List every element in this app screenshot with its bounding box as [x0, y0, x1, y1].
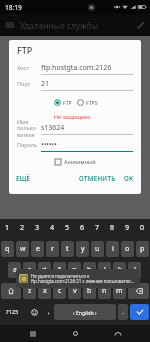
button[interactable]: Backspace: [128, 283, 149, 299]
button[interactable]: i: [106, 241, 119, 257]
staticText: Имя пользо-вателя: [17, 118, 45, 138]
staticText: FTP: [63, 99, 72, 106]
button[interactable]: r: [46, 241, 59, 257]
button[interactable]: Edit: [135, 20, 146, 31]
staticText: ,: [48, 308, 50, 316]
button[interactable]: k: [113, 262, 126, 278]
staticText: g: [72, 265, 77, 275]
button[interactable]: ЕЩЁ: [13, 171, 34, 185]
staticText: 21: [41, 79, 50, 89]
button[interactable]: j: [98, 262, 111, 278]
staticText: Порт: [17, 80, 31, 88]
staticText: ••••••: [41, 140, 57, 150]
staticText: f: [58, 265, 61, 275]
button[interactable]: 0: [135, 219, 150, 236]
button[interactable]: q: [1, 241, 14, 257]
staticText: ‹ English ›: [73, 309, 97, 316]
button[interactable]: FTP: [54, 99, 72, 106]
button[interactable]: f: [53, 262, 66, 278]
button[interactable]: m: [113, 283, 126, 299]
staticText: q: [5, 244, 10, 254]
button[interactable]: 2: [15, 219, 30, 236]
staticText: w: [20, 244, 26, 254]
button[interactable]: c: [53, 283, 66, 299]
button[interactable]: Emoji: [24, 303, 44, 321]
staticText: n: [102, 286, 107, 296]
button[interactable]: y: [76, 241, 89, 257]
button[interactable]: ,: [44, 303, 53, 321]
button[interactable]: Enter: [130, 304, 149, 320]
button[interactable]: Back: [108, 325, 128, 342]
staticText: 4: [50, 223, 55, 233]
button[interactable]: h: [83, 262, 96, 278]
staticText: Пароль: [17, 141, 38, 149]
button[interactable]: Анонимный: [55, 158, 96, 165]
button[interactable]: Shift: [1, 283, 21, 299]
button[interactable]: 4: [45, 219, 60, 236]
button[interactable]: v: [68, 283, 81, 299]
staticText: t: [66, 244, 69, 254]
staticText: ЕЩЁ: [16, 174, 31, 182]
button[interactable]: z: [23, 283, 36, 299]
button[interactable]: FTPS: [77, 99, 98, 106]
staticText: FTP: [17, 44, 33, 56]
button[interactable]: n: [98, 283, 111, 299]
button[interactable]: b: [83, 283, 96, 299]
staticText: j: [104, 265, 106, 275]
button[interactable]: x: [38, 283, 51, 299]
button[interactable]: Open navigation menu: [4, 19, 16, 31]
staticText: e: [36, 244, 40, 254]
staticText: a: [13, 265, 17, 275]
staticText: ОК: [124, 174, 134, 182]
staticText: 5: [65, 223, 70, 233]
button[interactable]: w: [16, 241, 29, 257]
staticText: o: [125, 244, 130, 254]
staticText: 9: [125, 223, 130, 233]
button[interactable]: a: [8, 262, 21, 278]
staticText: b: [87, 286, 92, 296]
button[interactable]: l: [128, 262, 141, 278]
staticText: Не защищено: [54, 113, 91, 120]
button[interactable]: 1: [0, 219, 15, 236]
button[interactable]: ‹ English ›: [54, 304, 116, 320]
staticText: 2: [20, 223, 25, 233]
button[interactable]: Home: [65, 325, 85, 342]
staticText: 3: [35, 223, 40, 233]
button[interactable]: u: [91, 241, 104, 257]
button[interactable]: t: [61, 241, 74, 257]
staticText: s: [28, 265, 32, 275]
button[interactable]: Recent apps: [23, 325, 43, 342]
button[interactable]: p: [136, 241, 149, 257]
staticText: i: [112, 244, 114, 254]
staticText: 8: [110, 223, 115, 233]
button[interactable]: s: [23, 262, 36, 278]
button[interactable]: d: [38, 262, 51, 278]
button[interactable]: 3: [30, 219, 45, 236]
staticText: y: [81, 244, 85, 254]
button[interactable]: g: [68, 262, 81, 278]
button[interactable]: 9: [120, 219, 135, 236]
staticText: 7: [95, 223, 100, 233]
button[interactable]: 7: [90, 219, 105, 236]
button[interactable]: 8: [105, 219, 120, 236]
button[interactable]: o: [121, 241, 134, 257]
button[interactable]: ОТМЕНИТЬ: [76, 171, 119, 185]
button[interactable]: ОК: [121, 171, 137, 185]
button[interactable]: ?123: [0, 303, 24, 321]
staticText: ?123: [6, 308, 19, 316]
staticText: ftp.hostgta.com:2126: [41, 63, 112, 73]
staticText: h: [87, 265, 92, 275]
staticText: u: [95, 244, 100, 254]
staticText: s13624: [41, 123, 65, 133]
staticText: 0: [140, 223, 145, 233]
button[interactable]: 6: [75, 219, 90, 236]
button[interactable]: e: [31, 241, 44, 257]
button[interactable]: .: [118, 304, 128, 320]
staticText: m: [116, 286, 123, 296]
staticText: Не удается подключиться к ftp.hostgta.co…: [31, 273, 137, 285]
button[interactable]: 5: [60, 219, 75, 236]
staticText: 6: [80, 223, 85, 233]
staticText: d: [42, 265, 47, 275]
staticText: 1: [5, 223, 10, 233]
staticText: v: [73, 286, 77, 296]
